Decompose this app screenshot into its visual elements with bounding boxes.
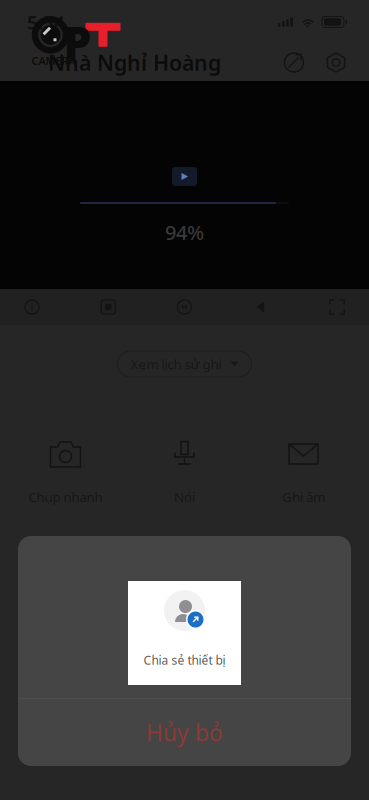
staticText: P: [63, 13, 91, 71]
staticText: CAMERA: [31, 54, 75, 68]
staticText: Nhà Nghỉ Hoàng: [48, 48, 221, 77]
staticText: Ghi âm: [282, 488, 325, 506]
button[interactable]: Camera settings: [324, 50, 348, 74]
staticText: Nói: [174, 488, 195, 506]
button[interactable]: Screenshot: [88, 289, 128, 325]
button[interactable]: Ghi âm: [244, 438, 363, 506]
button[interactable]: Edit camera: [282, 50, 306, 74]
button[interactable]: Chụp nhanh: [6, 438, 125, 506]
button[interactable]: Hủy bỏ: [18, 699, 351, 766]
staticText: Xem lịch sử ghi: [130, 355, 221, 373]
staticText: 94%: [165, 219, 204, 246]
staticText: Chia sẻ thiết bị: [143, 652, 225, 668]
button[interactable]: Xem lịch sử ghi: [117, 351, 251, 377]
staticText: Hủy bỏ: [146, 717, 223, 747]
staticText: Chụp nhanh: [28, 488, 102, 506]
staticText: 5:54: [27, 10, 65, 34]
button[interactable]: Chia sẻ thiết bị: [128, 581, 241, 685]
